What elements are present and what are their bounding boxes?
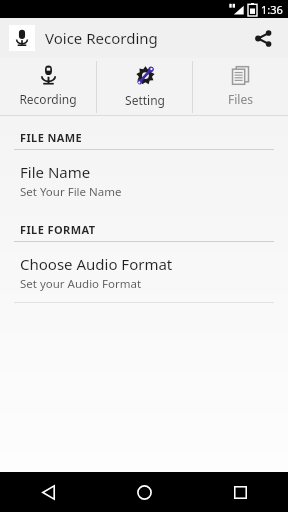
button[interactable]: Share — [248, 23, 278, 53]
button[interactable]: Setting — [97, 58, 192, 116]
button[interactable]: Recents — [192, 472, 288, 512]
staticText: 1:36 — [261, 2, 283, 17]
button[interactable]: File Name — [0, 150, 288, 210]
staticText: Choose Audio Format — [20, 254, 173, 274]
staticText: File Name — [20, 162, 91, 182]
staticText: Set your Audio Format — [20, 276, 142, 292]
button[interactable]: Choose Audio Format — [0, 242, 288, 302]
staticText: Set Your File Name — [20, 184, 122, 200]
staticText: Setting — [125, 92, 165, 108]
staticText: Voice Recording — [45, 28, 158, 48]
button[interactable]: Home — [96, 472, 192, 512]
button[interactable]: Recording — [0, 58, 96, 116]
staticText: Recording — [19, 91, 77, 107]
button[interactable]: Back — [0, 472, 96, 512]
button[interactable]: Files — [193, 58, 288, 116]
staticText: FILE NAME — [20, 130, 83, 145]
staticText: Files — [228, 91, 253, 107]
staticText: FILE FORMAT — [20, 222, 96, 237]
